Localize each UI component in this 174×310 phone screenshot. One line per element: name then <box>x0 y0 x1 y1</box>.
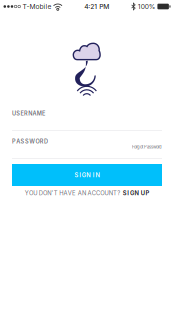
staticText: D <box>44 138 48 145</box>
staticText: O <box>35 138 39 145</box>
staticText: S <box>123 189 127 197</box>
staticText: I <box>79 171 81 179</box>
staticText: C <box>92 189 96 197</box>
staticText: E <box>72 189 76 197</box>
staticText: O <box>29 189 33 197</box>
staticText: Y <box>25 189 29 197</box>
staticText: 100% <box>138 2 156 11</box>
staticText: T <box>54 189 58 197</box>
staticText: W <box>29 138 35 145</box>
staticText: R <box>40 138 44 145</box>
staticText: T <box>113 189 117 197</box>
staticText: H <box>59 189 63 197</box>
staticText: A <box>32 110 36 117</box>
staticText: P <box>12 138 16 145</box>
staticText: S <box>21 138 25 145</box>
staticText: E <box>21 110 24 117</box>
staticText: U <box>141 189 145 197</box>
staticText: S <box>74 171 78 179</box>
staticText: A <box>78 189 82 197</box>
staticText: ' <box>51 189 53 197</box>
staticText: E <box>42 110 45 117</box>
staticText: M <box>37 110 42 117</box>
staticText: D <box>39 189 43 197</box>
staticText: N <box>82 189 86 197</box>
staticText: G <box>130 189 134 197</box>
staticText: S <box>16 110 20 117</box>
staticText: I <box>93 171 95 179</box>
staticText: S <box>25 138 29 145</box>
staticText: N <box>134 189 138 197</box>
staticText: U <box>104 189 108 197</box>
staticText: G <box>82 171 86 179</box>
staticText: N <box>86 171 90 179</box>
staticText: 4:21 PM <box>84 2 109 11</box>
staticText: N <box>95 171 99 179</box>
staticText: O <box>43 189 47 197</box>
staticText: A <box>87 189 91 197</box>
staticText: N <box>28 110 32 117</box>
staticText: P <box>145 189 149 197</box>
staticText: T-Mobile <box>22 2 51 11</box>
staticText: U <box>12 110 16 117</box>
button[interactable]: S <box>12 164 162 186</box>
staticText: R <box>24 110 28 117</box>
staticText: N <box>109 189 113 197</box>
staticText: C <box>96 189 100 197</box>
staticText: ? <box>117 189 120 197</box>
button[interactable]: Y <box>0 189 174 197</box>
staticText: O <box>100 189 104 197</box>
staticText: N <box>47 189 51 197</box>
staticText: U <box>33 189 37 197</box>
button[interactable]: Forgot Password <box>12 143 162 151</box>
staticText: A <box>16 138 20 145</box>
staticText: A <box>64 189 68 197</box>
staticText: Forgot Password <box>132 144 162 149</box>
staticText: V <box>68 189 72 197</box>
staticText: I <box>127 189 129 197</box>
